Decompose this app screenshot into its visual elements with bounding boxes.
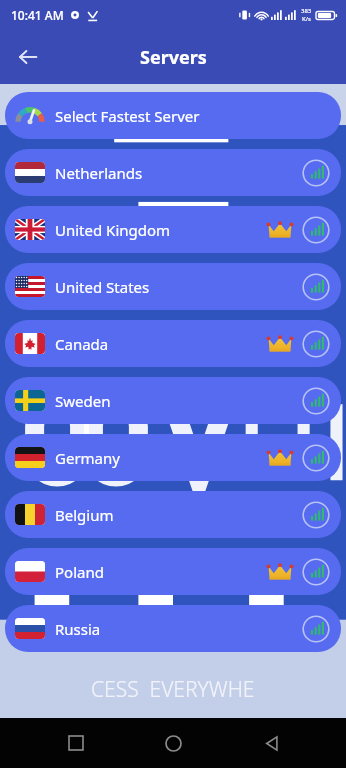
button[interactable]: Home bbox=[151, 721, 195, 765]
staticText: 383 bbox=[301, 7, 312, 15]
staticText: Sweden bbox=[55, 391, 111, 411]
button[interactable]: Poland bbox=[5, 548, 341, 595]
staticText: United Kingdom bbox=[55, 220, 171, 240]
button[interactable]: Sweden bbox=[5, 377, 341, 424]
staticText: 10:41 AM bbox=[11, 7, 64, 23]
button[interactable]: Russia bbox=[5, 605, 341, 652]
other: Signal strength bbox=[302, 216, 330, 244]
button[interactable]: Germany bbox=[5, 434, 341, 481]
staticText: United States bbox=[55, 277, 150, 297]
staticText: Poland bbox=[55, 562, 104, 582]
other: Signal strength bbox=[302, 558, 330, 586]
other: Signal strength bbox=[302, 444, 330, 472]
other: Signal strength bbox=[302, 159, 330, 187]
staticText: Russia bbox=[55, 619, 101, 639]
staticText: Servers bbox=[140, 45, 207, 70]
button[interactable]: Canada bbox=[5, 320, 341, 367]
staticText: CESS EVERYWHE bbox=[91, 675, 255, 704]
staticText: Germany bbox=[55, 448, 120, 468]
staticText: Canada bbox=[55, 334, 109, 354]
button[interactable]: Back bbox=[249, 721, 293, 765]
button[interactable]: United Kingdom bbox=[5, 206, 341, 253]
button[interactable]: United States bbox=[5, 263, 341, 310]
other: Signal strength bbox=[302, 330, 330, 358]
staticText: Netherlands bbox=[55, 163, 143, 183]
button[interactable]: Recents bbox=[54, 721, 98, 765]
button[interactable]: Select Fastest Server bbox=[5, 92, 341, 139]
button[interactable]: Netherlands bbox=[5, 149, 341, 196]
button[interactable]: Belgium bbox=[5, 491, 341, 538]
staticText: Belgium bbox=[55, 505, 114, 525]
staticText: K/s bbox=[302, 15, 311, 23]
other: Signal strength bbox=[302, 501, 330, 529]
other: Signal strength bbox=[302, 387, 330, 415]
button[interactable]: Back bbox=[8, 37, 48, 77]
other: Signal strength bbox=[302, 615, 330, 643]
staticText: Select Fastest Server bbox=[55, 106, 200, 126]
other: Signal strength bbox=[302, 273, 330, 301]
